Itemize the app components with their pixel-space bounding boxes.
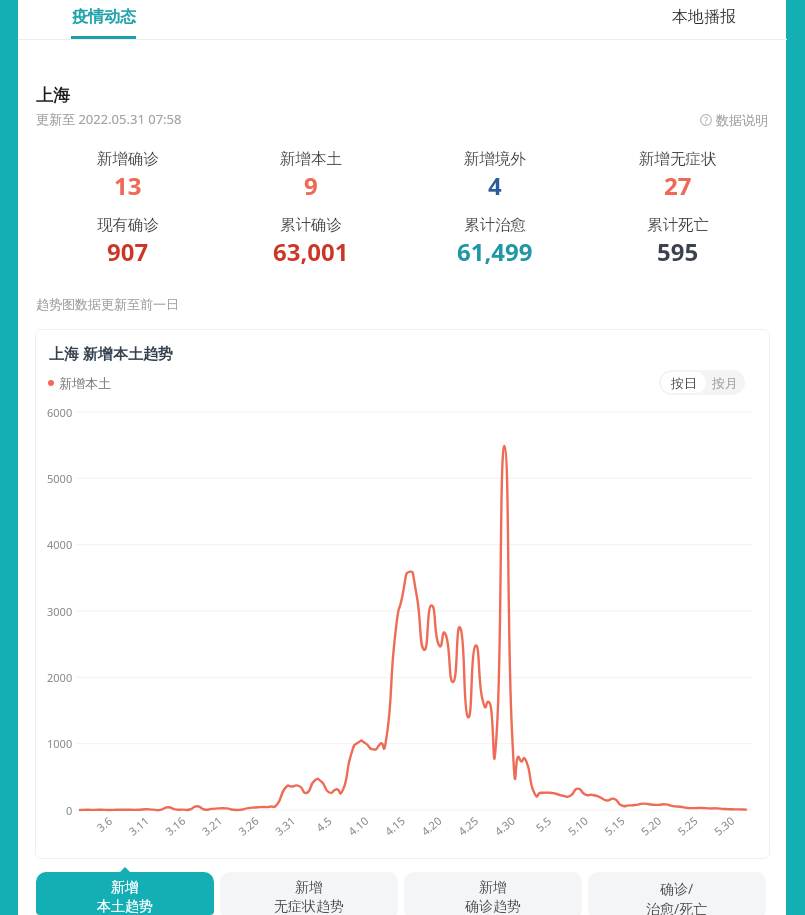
staticText: 907 — [107, 235, 149, 268]
button[interactable]: 确诊/ — [588, 872, 766, 915]
button[interactable]: ? — [700, 111, 768, 129]
staticText: 27 — [664, 169, 692, 202]
button[interactable]: 本地播报 — [650, 0, 758, 39]
staticText: 现有确诊 — [97, 215, 159, 235]
staticText: 本地播报 — [672, 7, 736, 27]
button[interactable]: 按日 — [661, 372, 706, 393]
staticText: 疫情动态 — [72, 7, 136, 27]
button[interactable]: 累计确诊 — [219, 215, 402, 268]
button[interactable]: 疫情动态 — [59, 0, 149, 39]
staticText: ? — [704, 114, 708, 126]
staticText: 新增本土 — [59, 375, 111, 391]
staticText: 595 — [657, 235, 699, 268]
staticText: 更新至 2022.05.31 07:58 — [36, 110, 182, 128]
staticText: 趋势图数据更新至前一日 — [36, 296, 179, 312]
staticText: 本土趋势 — [97, 898, 153, 915]
staticText: 新增本土 — [280, 149, 342, 169]
staticText: 新增境外 — [464, 149, 526, 169]
button[interactable]: 现有确诊 — [36, 215, 219, 268]
staticText: 按月 — [712, 375, 738, 391]
staticText: 新增确诊 — [97, 149, 159, 169]
staticText: 确诊趋势 — [465, 898, 521, 915]
staticText: 治愈/死亡 — [646, 899, 708, 915]
button[interactable]: 新增本土 — [219, 149, 402, 202]
staticText: 上海 新增本土趋势 — [49, 343, 173, 363]
staticText: 新增 — [111, 879, 139, 897]
button[interactable]: 累计治愈 — [403, 215, 586, 268]
staticText: 新增 — [295, 879, 323, 897]
staticText: 无症状趋势 — [274, 898, 344, 915]
staticText: 确诊/ — [660, 879, 694, 898]
staticText: 61,499 — [457, 235, 533, 268]
staticText: 累计治愈 — [464, 215, 526, 235]
staticText: 63,001 — [273, 235, 349, 268]
staticText: 13 — [114, 169, 142, 202]
button[interactable]: 累计死亡 — [586, 215, 769, 268]
staticText: 数据说明 — [716, 112, 768, 128]
staticText: 按日 — [671, 375, 697, 391]
button[interactable]: 新增 — [404, 872, 582, 915]
button[interactable]: 新增无症状 — [586, 149, 769, 202]
staticText: 9 — [304, 169, 318, 202]
staticText: 新增 — [479, 879, 507, 897]
button[interactable]: 新增确诊 — [36, 149, 219, 202]
button[interactable]: 新增 — [220, 872, 398, 915]
staticText: 累计确诊 — [280, 215, 342, 235]
button[interactable]: 新增 — [36, 872, 214, 915]
staticText: 4 — [488, 169, 502, 202]
staticText: 累计死亡 — [647, 215, 709, 235]
button[interactable]: 新增境外 — [403, 149, 586, 202]
button[interactable]: 按月 — [706, 372, 743, 393]
staticText: 新增无症状 — [639, 149, 717, 169]
staticText: 上海 — [36, 85, 70, 106]
